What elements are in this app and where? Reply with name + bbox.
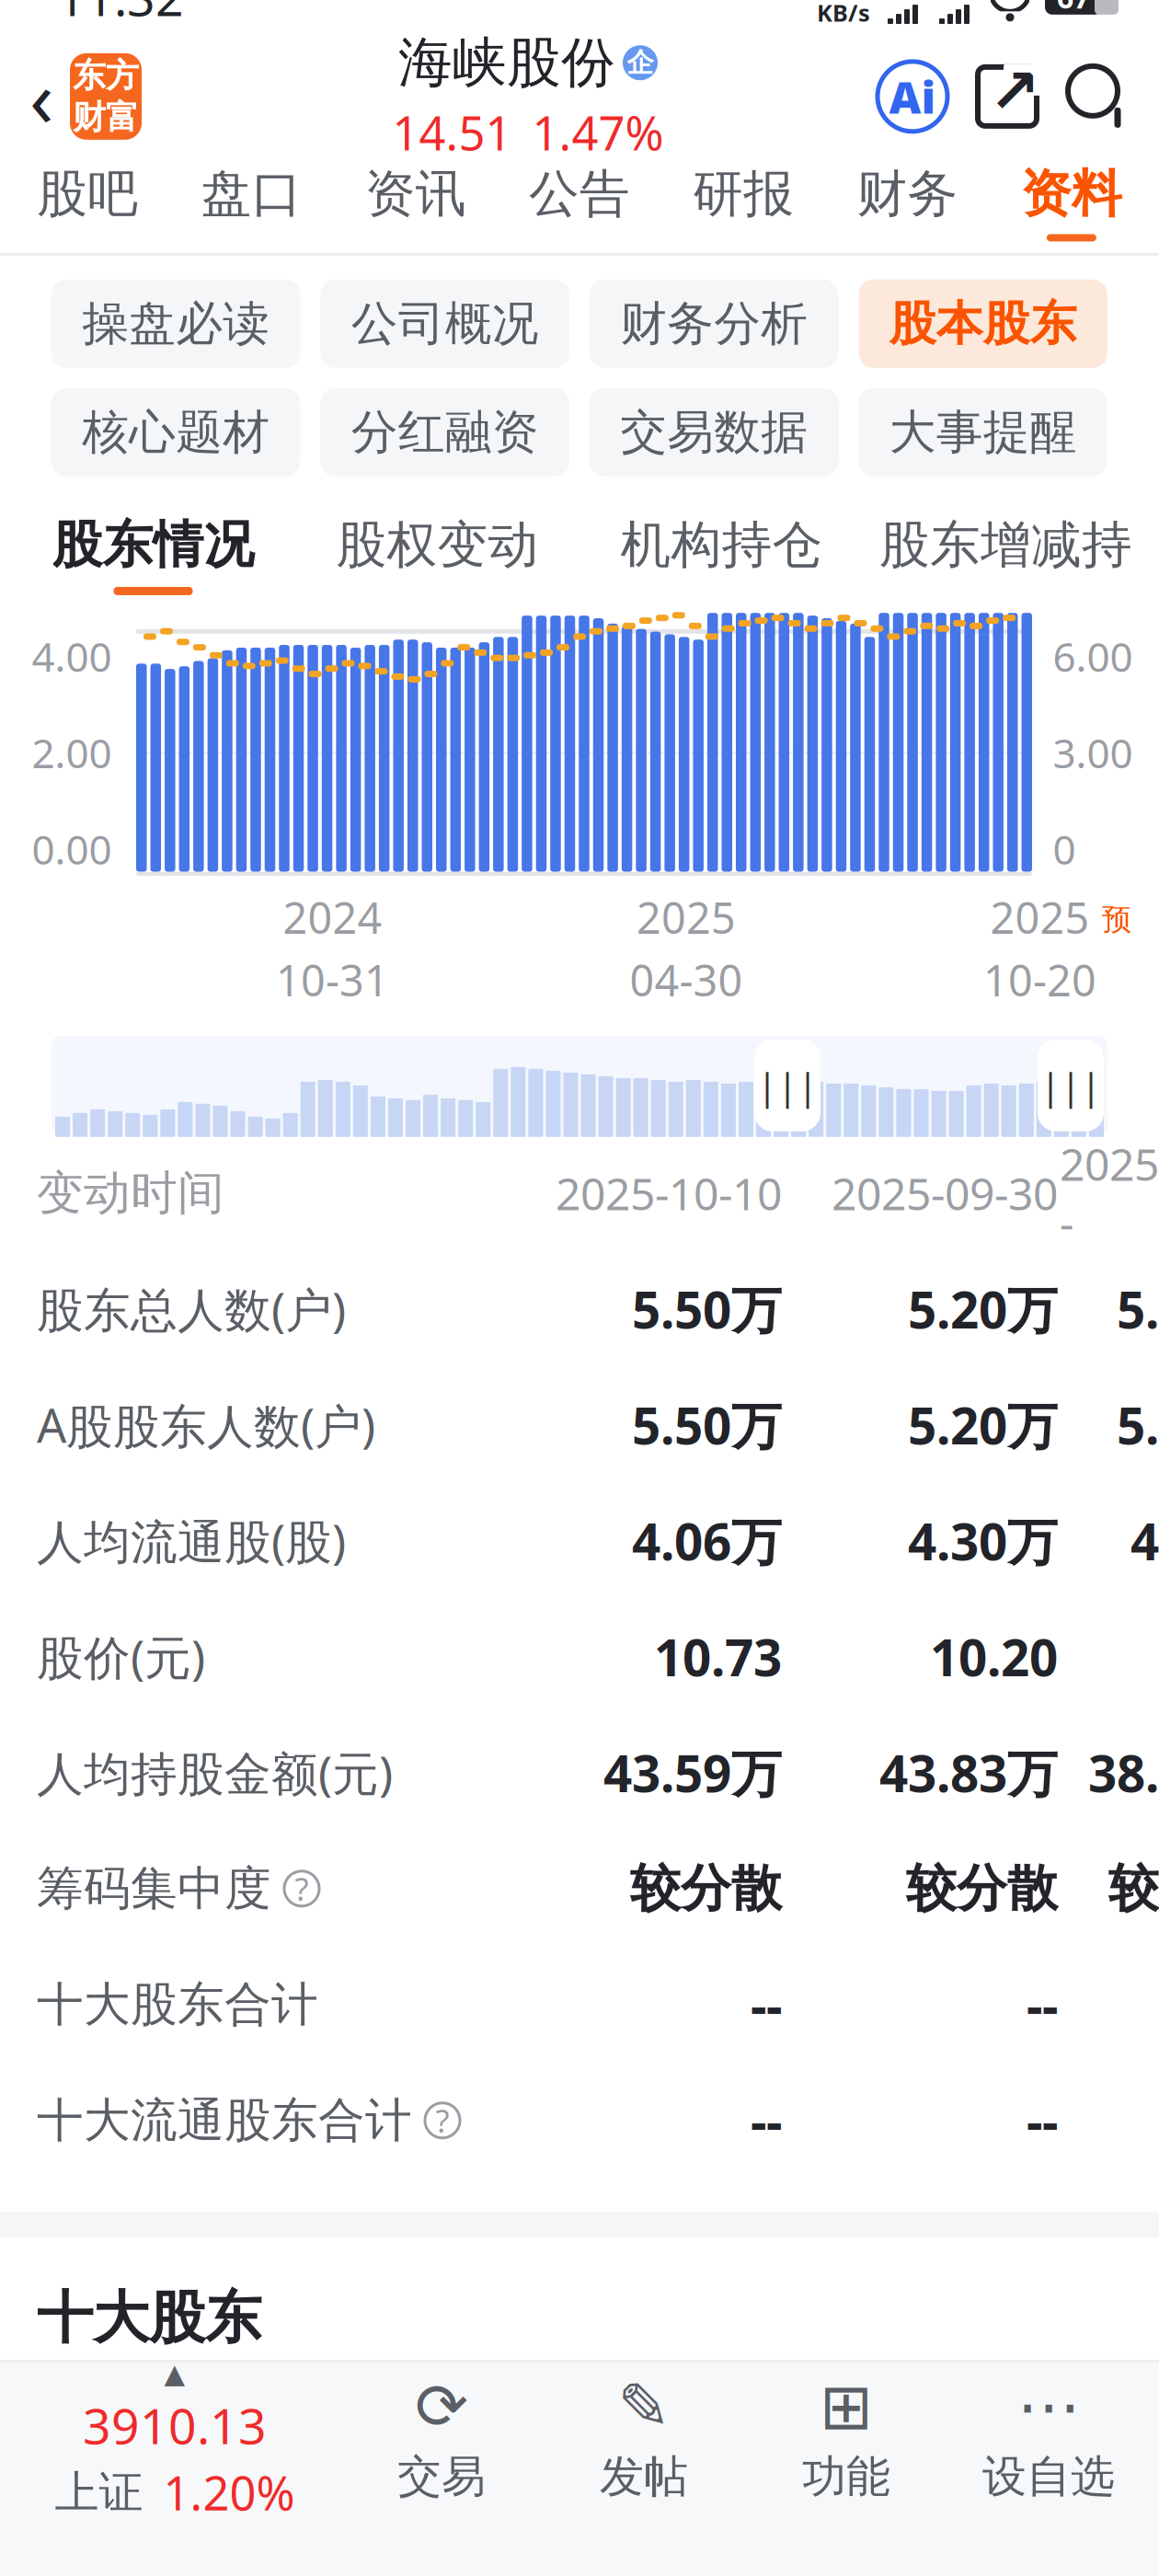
button[interactable]: 公司概况 — [321, 280, 569, 368]
staticText: 1.20% — [163, 2462, 295, 2523]
button[interactable]: 财务分析 — [590, 280, 838, 368]
staticText: 操盘必读 — [82, 295, 270, 352]
staticText: KB/s — [817, 0, 870, 28]
staticText: ? — [436, 2099, 449, 2142]
staticText: 5.50万 — [632, 1391, 782, 1458]
button[interactable]: ⟳ — [340, 2363, 543, 2519]
button[interactable]: 资讯 — [334, 152, 498, 253]
staticText: 发帖 — [600, 2450, 688, 2504]
button[interactable]: 分红融资 — [321, 388, 569, 476]
staticText: 3910.13 — [83, 2393, 267, 2458]
button[interactable]: ⊞ — [745, 2363, 947, 2519]
staticText: 10-31 — [276, 951, 389, 1008]
staticText: 研报 — [693, 163, 794, 225]
staticText: ||| — [757, 1061, 818, 1110]
staticText: 67 — [1057, 0, 1090, 17]
staticText: 2025- — [1060, 1134, 1159, 1252]
button[interactable]: AI 助手 — [878, 62, 947, 131]
staticText: 5. — [1117, 1391, 1159, 1458]
button[interactable]: 股东增减持 — [864, 500, 1148, 609]
staticText: Ai — [889, 67, 936, 126]
staticText: 5.50万 — [632, 1276, 782, 1342]
staticText: 资讯 — [365, 163, 466, 225]
staticText: 财务 — [857, 163, 958, 225]
staticText: 十大股东合计 — [37, 1976, 318, 2033]
staticText: 海峡股份 — [398, 30, 615, 96]
button[interactable]: 资料 — [989, 152, 1153, 253]
staticText: 交易数据 — [620, 404, 808, 461]
button[interactable]: ⋯ — [947, 2363, 1150, 2519]
staticText: 人均流通股(股) — [37, 1510, 346, 1572]
button[interactable]: 股吧 — [6, 152, 170, 253]
staticText: 企 — [627, 46, 654, 79]
staticText: ⟳ — [415, 2370, 468, 2443]
staticText: 股价(元) — [37, 1626, 205, 1688]
staticText: 2025-09-30 — [832, 1164, 1058, 1222]
staticText: 十大流通股东合计 — [37, 2092, 412, 2149]
staticText: 功能 — [802, 2450, 890, 2504]
button[interactable]: 财务 — [825, 152, 989, 253]
staticText: 核心题材 — [82, 404, 270, 461]
staticText: 变动时间 — [37, 1164, 224, 1222]
staticText: 4 — [1130, 1507, 1159, 1574]
staticText: 股东情况 — [52, 514, 254, 576]
button[interactable]: 东方财富 — [70, 53, 142, 140]
button[interactable]: 股本股东 — [859, 280, 1107, 368]
staticText: 十大股东 — [37, 2283, 261, 2353]
button[interactable]: 调整范围 — [1038, 1039, 1104, 1131]
staticText: 4.30万 — [908, 1507, 1058, 1574]
staticText: 资料 — [1021, 163, 1122, 225]
button[interactable]: 核心题材 — [52, 388, 300, 476]
staticText: 11:32 — [57, 0, 184, 30]
button[interactable]: 交易数据 — [590, 388, 838, 476]
button[interactable]: 机构持仓 — [579, 500, 864, 609]
staticText: -- — [751, 2087, 782, 2154]
staticText: 38. — [1088, 1739, 1159, 1806]
button[interactable]: 调整范围 — [754, 1039, 820, 1131]
button[interactable]: 上证指数 — [9, 2363, 340, 2519]
staticText: 分红融资 — [351, 404, 539, 461]
staticText: 设自选 — [982, 2450, 1115, 2504]
staticText: 2025 — [990, 889, 1090, 946]
staticText: 较分散 — [906, 1858, 1058, 1919]
staticText: 2025 — [637, 889, 736, 946]
button[interactable]: 股东情况 — [11, 500, 295, 609]
staticText: ▲ — [164, 2358, 185, 2389]
staticText: 东方 — [73, 55, 139, 96]
button[interactable]: 股权变动 — [295, 500, 579, 609]
staticText: 5.20万 — [908, 1276, 1058, 1342]
staticText: ⋯ — [1017, 2370, 1080, 2443]
staticText: 2024 — [283, 889, 382, 946]
staticText: 股东增减持 — [879, 514, 1132, 576]
staticText: 盘口 — [201, 163, 302, 225]
staticText: 公告 — [529, 163, 630, 225]
button[interactable]: 返回 — [13, 46, 70, 147]
button[interactable]: ✎ — [543, 2363, 745, 2519]
staticText: 财富 — [73, 97, 139, 138]
staticText: 较 — [1108, 1858, 1159, 1919]
staticText: 6.00 — [1053, 629, 1133, 683]
staticText: 筹码集中度 — [37, 1860, 271, 1917]
staticText: ? — [295, 1867, 309, 1910]
button[interactable]: 分享 — [971, 61, 1043, 132]
staticText: -- — [751, 1971, 782, 2038]
button[interactable]: 公告 — [498, 152, 662, 253]
button[interactable]: 搜索 — [1061, 60, 1135, 133]
staticText: 04-30 — [630, 951, 743, 1008]
staticText: 大事提醒 — [889, 404, 1077, 461]
button[interactable]: 大事提醒 — [859, 388, 1107, 476]
staticText: 3.00 — [1053, 726, 1133, 779]
button[interactable]: 盘口 — [170, 152, 334, 253]
staticText: 上证 — [55, 2465, 143, 2520]
staticText: 43.59万 — [603, 1739, 782, 1806]
button[interactable]: 研报 — [661, 152, 825, 253]
staticText: 0.00 — [32, 822, 112, 876]
staticText: 2.00 — [32, 726, 112, 779]
staticText: 0 — [1053, 822, 1076, 876]
staticText: 股权变动 — [336, 514, 539, 576]
staticText: 机构持仓 — [620, 514, 823, 576]
button[interactable]: 操盘必读 — [52, 280, 300, 368]
staticText: 股本股东 — [889, 295, 1077, 352]
staticText: -- — [1027, 2087, 1058, 2154]
